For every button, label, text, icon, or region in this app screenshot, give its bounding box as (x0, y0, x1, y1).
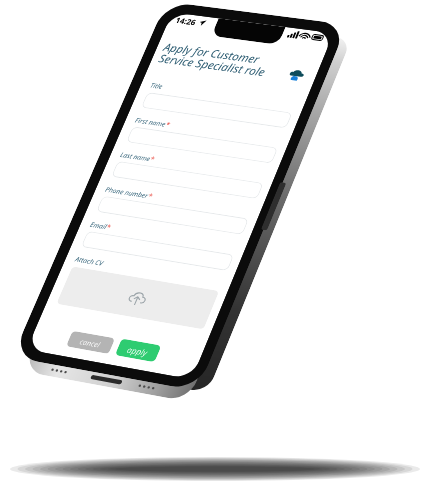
button[interactable]: Power button (261, 182, 286, 231)
button[interactable]: Upload CV (56, 266, 219, 329)
staticText: * (147, 191, 155, 201)
staticText: Last name (119, 150, 152, 163)
staticText: 14:26 (174, 15, 198, 27)
button[interactable] (141, 92, 293, 128)
button[interactable] (111, 161, 264, 199)
staticText: * (164, 119, 173, 129)
staticText: Phone number (104, 185, 150, 200)
staticText: * (105, 222, 113, 232)
staticText: Email (89, 220, 109, 231)
staticText: Title (149, 81, 164, 91)
button[interactable]: apply (115, 338, 161, 362)
staticText: Attach CV (74, 254, 105, 268)
staticText: cancel (78, 336, 102, 349)
staticText: apply (125, 344, 150, 358)
button[interactable] (81, 231, 234, 271)
button[interactable]: Company logo (287, 68, 306, 82)
button[interactable]: cancel (66, 331, 115, 354)
staticText: First name (134, 116, 168, 128)
staticText: * (149, 154, 157, 164)
staticText: Apply for Customer Service Specialist ro… (156, 39, 298, 83)
button[interactable] (126, 126, 278, 164)
button[interactable] (96, 196, 249, 235)
